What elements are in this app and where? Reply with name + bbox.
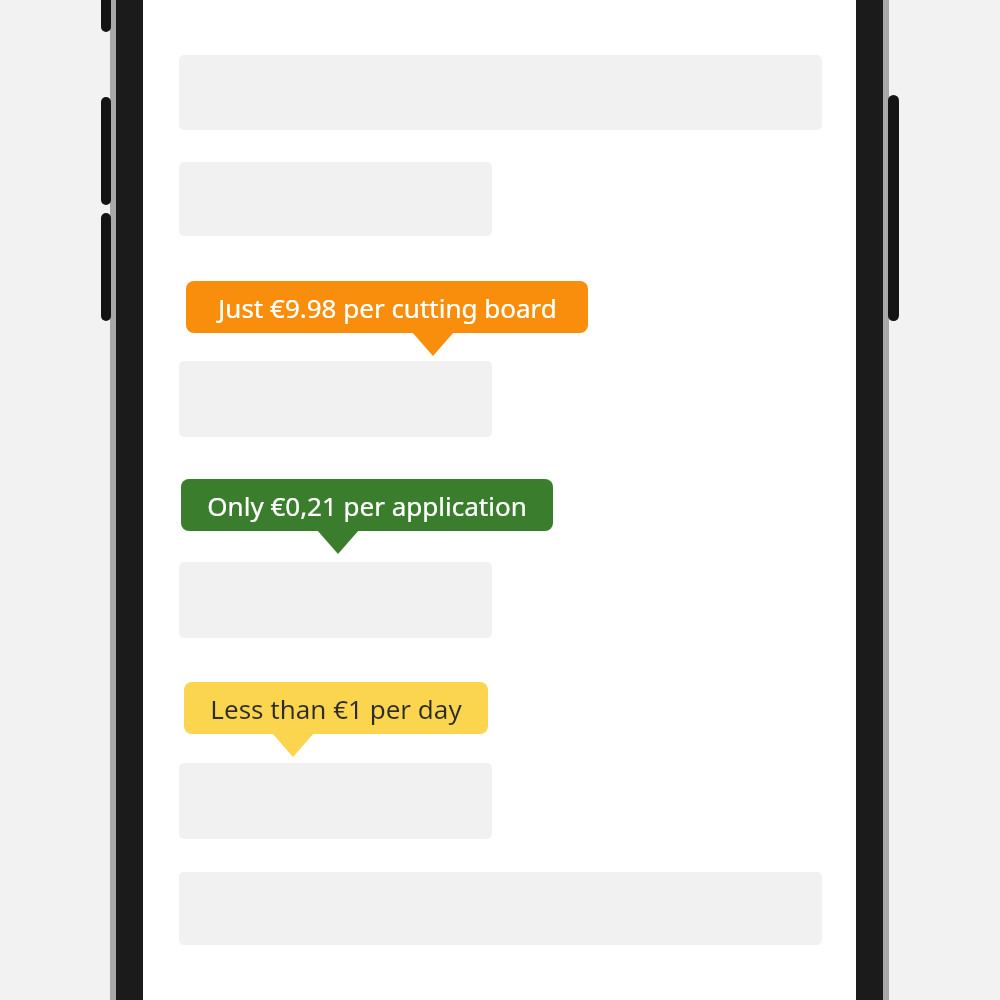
button[interactable]: Less than €1 per day <box>184 682 488 758</box>
staticText: Only €0,21 per application <box>207 488 527 523</box>
button[interactable]: Volume up <box>101 97 111 205</box>
button[interactable]: Mute switch <box>101 0 111 32</box>
button[interactable]: Power <box>888 95 899 321</box>
button[interactable]: Only €0,21 per application <box>181 479 553 555</box>
staticText: Just €9.98 per cutting board <box>218 290 557 325</box>
button[interactable]: Just €9.98 per cutting board <box>186 281 588 357</box>
staticText: Less than €1 per day <box>210 691 462 726</box>
button[interactable]: Volume down <box>101 213 111 321</box>
